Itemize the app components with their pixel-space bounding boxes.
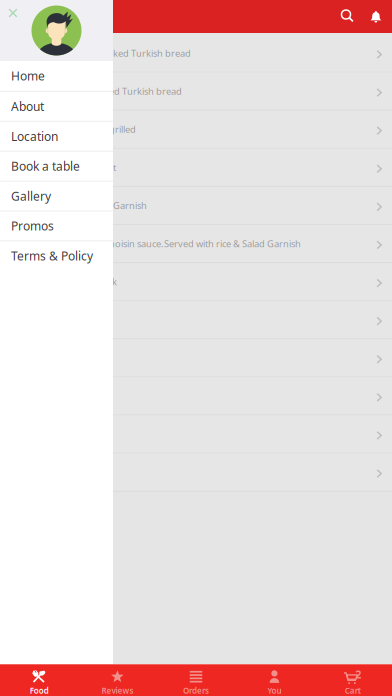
button[interactable]: You xyxy=(235,665,314,696)
button[interactable]: Slow cooked lamb shank xyxy=(0,263,392,301)
button[interactable]: Beef strips with fatija & hoisin sauce.S… xyxy=(0,225,392,263)
button[interactable]: Mixed grill platter xyxy=(0,377,392,415)
button[interactable]: Chicken sish.Fresh baked Turkish bread xyxy=(0,73,392,111)
staticText: Cart xyxy=(345,685,361,696)
button[interactable]: Search xyxy=(334,0,362,33)
button[interactable]: About xyxy=(0,91,113,121)
staticText: You xyxy=(267,685,281,696)
staticText: About xyxy=(11,98,44,114)
staticText: Slow cooked lamb shank xyxy=(12,275,117,288)
button[interactable]: Close menu xyxy=(1,1,25,25)
staticText: Lamb skewers.Fresh baked Turkish bread xyxy=(12,47,191,59)
button[interactable]: 2 xyxy=(314,665,392,696)
button[interactable]: Home xyxy=(0,61,113,91)
button[interactable]: Food xyxy=(0,665,78,696)
staticText: Orders xyxy=(183,685,209,696)
staticText: Chicken sish.Fresh baked Turkish bread xyxy=(12,85,182,97)
button[interactable]: Promos xyxy=(0,210,113,240)
staticText: Promos xyxy=(11,218,54,234)
staticText: Food xyxy=(30,685,49,696)
button[interactable]: Notifications xyxy=(362,0,390,33)
button[interactable]: Book a table xyxy=(0,151,113,181)
button[interactable]: Marinated lamb cubes grilled xyxy=(0,111,392,149)
staticText: Home xyxy=(11,68,45,84)
button[interactable]: Char grilled chicken fillet xyxy=(0,149,392,187)
button[interactable]: Char grilled salmon xyxy=(0,339,392,377)
button[interactable]: Orders xyxy=(157,665,235,696)
staticText: Marinated lamb cubes grilled xyxy=(12,123,136,135)
button[interactable]: Terms & Policy xyxy=(0,240,113,270)
staticText: Book a table xyxy=(11,158,80,174)
staticText: Beef strips with fatija & hoisin sauce.S… xyxy=(12,237,301,250)
staticText: Char grilled chicken fillet xyxy=(12,161,116,174)
staticText: Lamb cutlets with Salad Garnish xyxy=(12,199,147,212)
staticText: 2 xyxy=(355,667,361,681)
staticText: Location xyxy=(11,128,58,144)
button[interactable]: Reviews xyxy=(78,665,157,696)
staticText: Gallery xyxy=(11,188,51,204)
button[interactable]: Lamb skewers.Fresh baked Turkish bread xyxy=(0,34,392,73)
button[interactable]: Lamb cutlets with Salad Garnish xyxy=(0,187,392,225)
button[interactable]: Vegetarian moussaka xyxy=(0,415,392,454)
staticText: Terms & Policy xyxy=(11,248,93,264)
button[interactable]: Falafel plate xyxy=(0,454,392,492)
button[interactable]: Grilled king prawns xyxy=(0,301,392,339)
button[interactable]: Gallery xyxy=(0,181,113,210)
button[interactable]: Location xyxy=(0,121,113,151)
staticText: Reviews xyxy=(102,685,134,696)
